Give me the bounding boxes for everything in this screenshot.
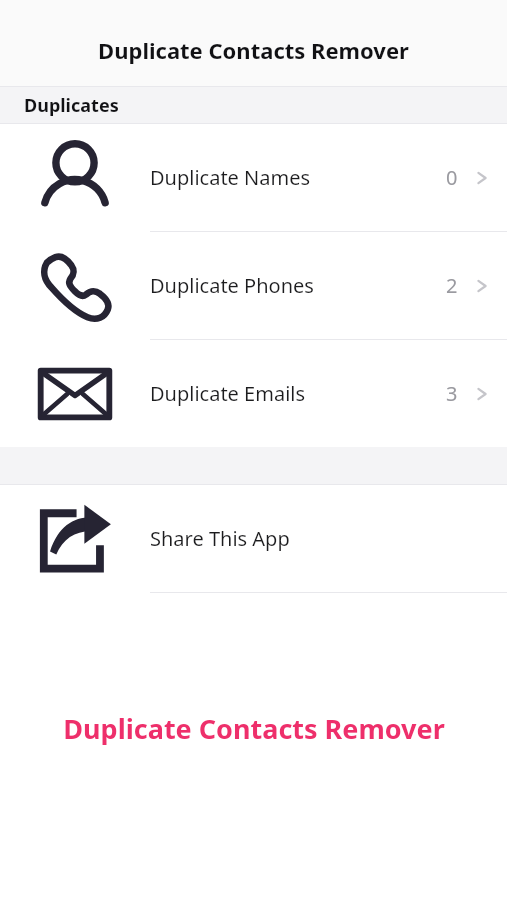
staticText: Duplicate Contacts Remover — [98, 35, 409, 65]
button[interactable]: Duplicate Names — [0, 124, 507, 232]
staticText: Duplicate Contacts Remover — [63, 710, 445, 747]
button[interactable]: Duplicate Phones — [0, 232, 507, 340]
staticText: 3 — [446, 380, 458, 407]
staticText: Duplicate Emails — [150, 380, 306, 407]
button[interactable]: Duplicate Emails — [0, 340, 507, 447]
staticText: 2 — [446, 272, 458, 299]
staticText: Duplicate Names — [150, 164, 311, 191]
staticText: 0 — [446, 164, 458, 191]
staticText: Duplicates — [24, 93, 119, 118]
staticText: Share This App — [150, 525, 290, 552]
button[interactable]: Share This App — [0, 485, 507, 593]
staticText: Duplicate Phones — [150, 272, 314, 299]
